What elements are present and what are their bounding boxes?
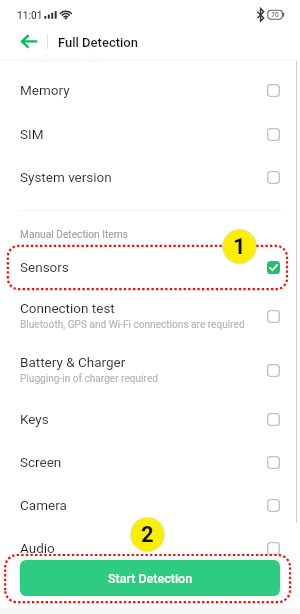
staticText: SIM [20, 126, 44, 142]
button[interactable]: Camera [0, 483, 300, 526]
staticText: Camera [20, 497, 67, 513]
staticText: Plugging-in of charger required [20, 373, 158, 385]
button[interactable]: Sensors [0, 245, 300, 288]
button[interactable]: Battery & Charger [0, 342, 300, 396]
staticText: Keys [20, 411, 49, 427]
button[interactable]: Memory [0, 68, 300, 111]
staticText: Manual Detection Items [20, 229, 128, 241]
staticText: Connection test [20, 300, 115, 316]
staticText: Audio [20, 540, 55, 556]
staticText: Bluetooth, GPS and Wi-Fi connections are… [20, 319, 245, 331]
button[interactable]: System version [0, 155, 300, 198]
button[interactable]: Screen [0, 440, 300, 483]
staticText: Sensors [20, 259, 69, 275]
button[interactable]: Start Detection [20, 560, 280, 596]
button[interactable]: Audio [0, 526, 300, 569]
staticText: 11:01 [17, 10, 43, 22]
button[interactable]: SIM [0, 112, 300, 155]
staticText: Screen [20, 454, 62, 470]
staticText: 1 [233, 234, 246, 260]
button[interactable]: Keys [0, 397, 300, 440]
staticText: 70 [271, 11, 279, 19]
staticText: Memory [20, 82, 70, 98]
staticText: Start Detection [108, 571, 193, 586]
button[interactable]: Back [14, 28, 46, 60]
button[interactable]: Connection test [0, 288, 300, 342]
staticText: System version [20, 169, 112, 185]
staticText: 2 [141, 522, 154, 548]
staticText: Full Detection [58, 35, 138, 50]
staticText: Battery & Charger [20, 354, 126, 370]
